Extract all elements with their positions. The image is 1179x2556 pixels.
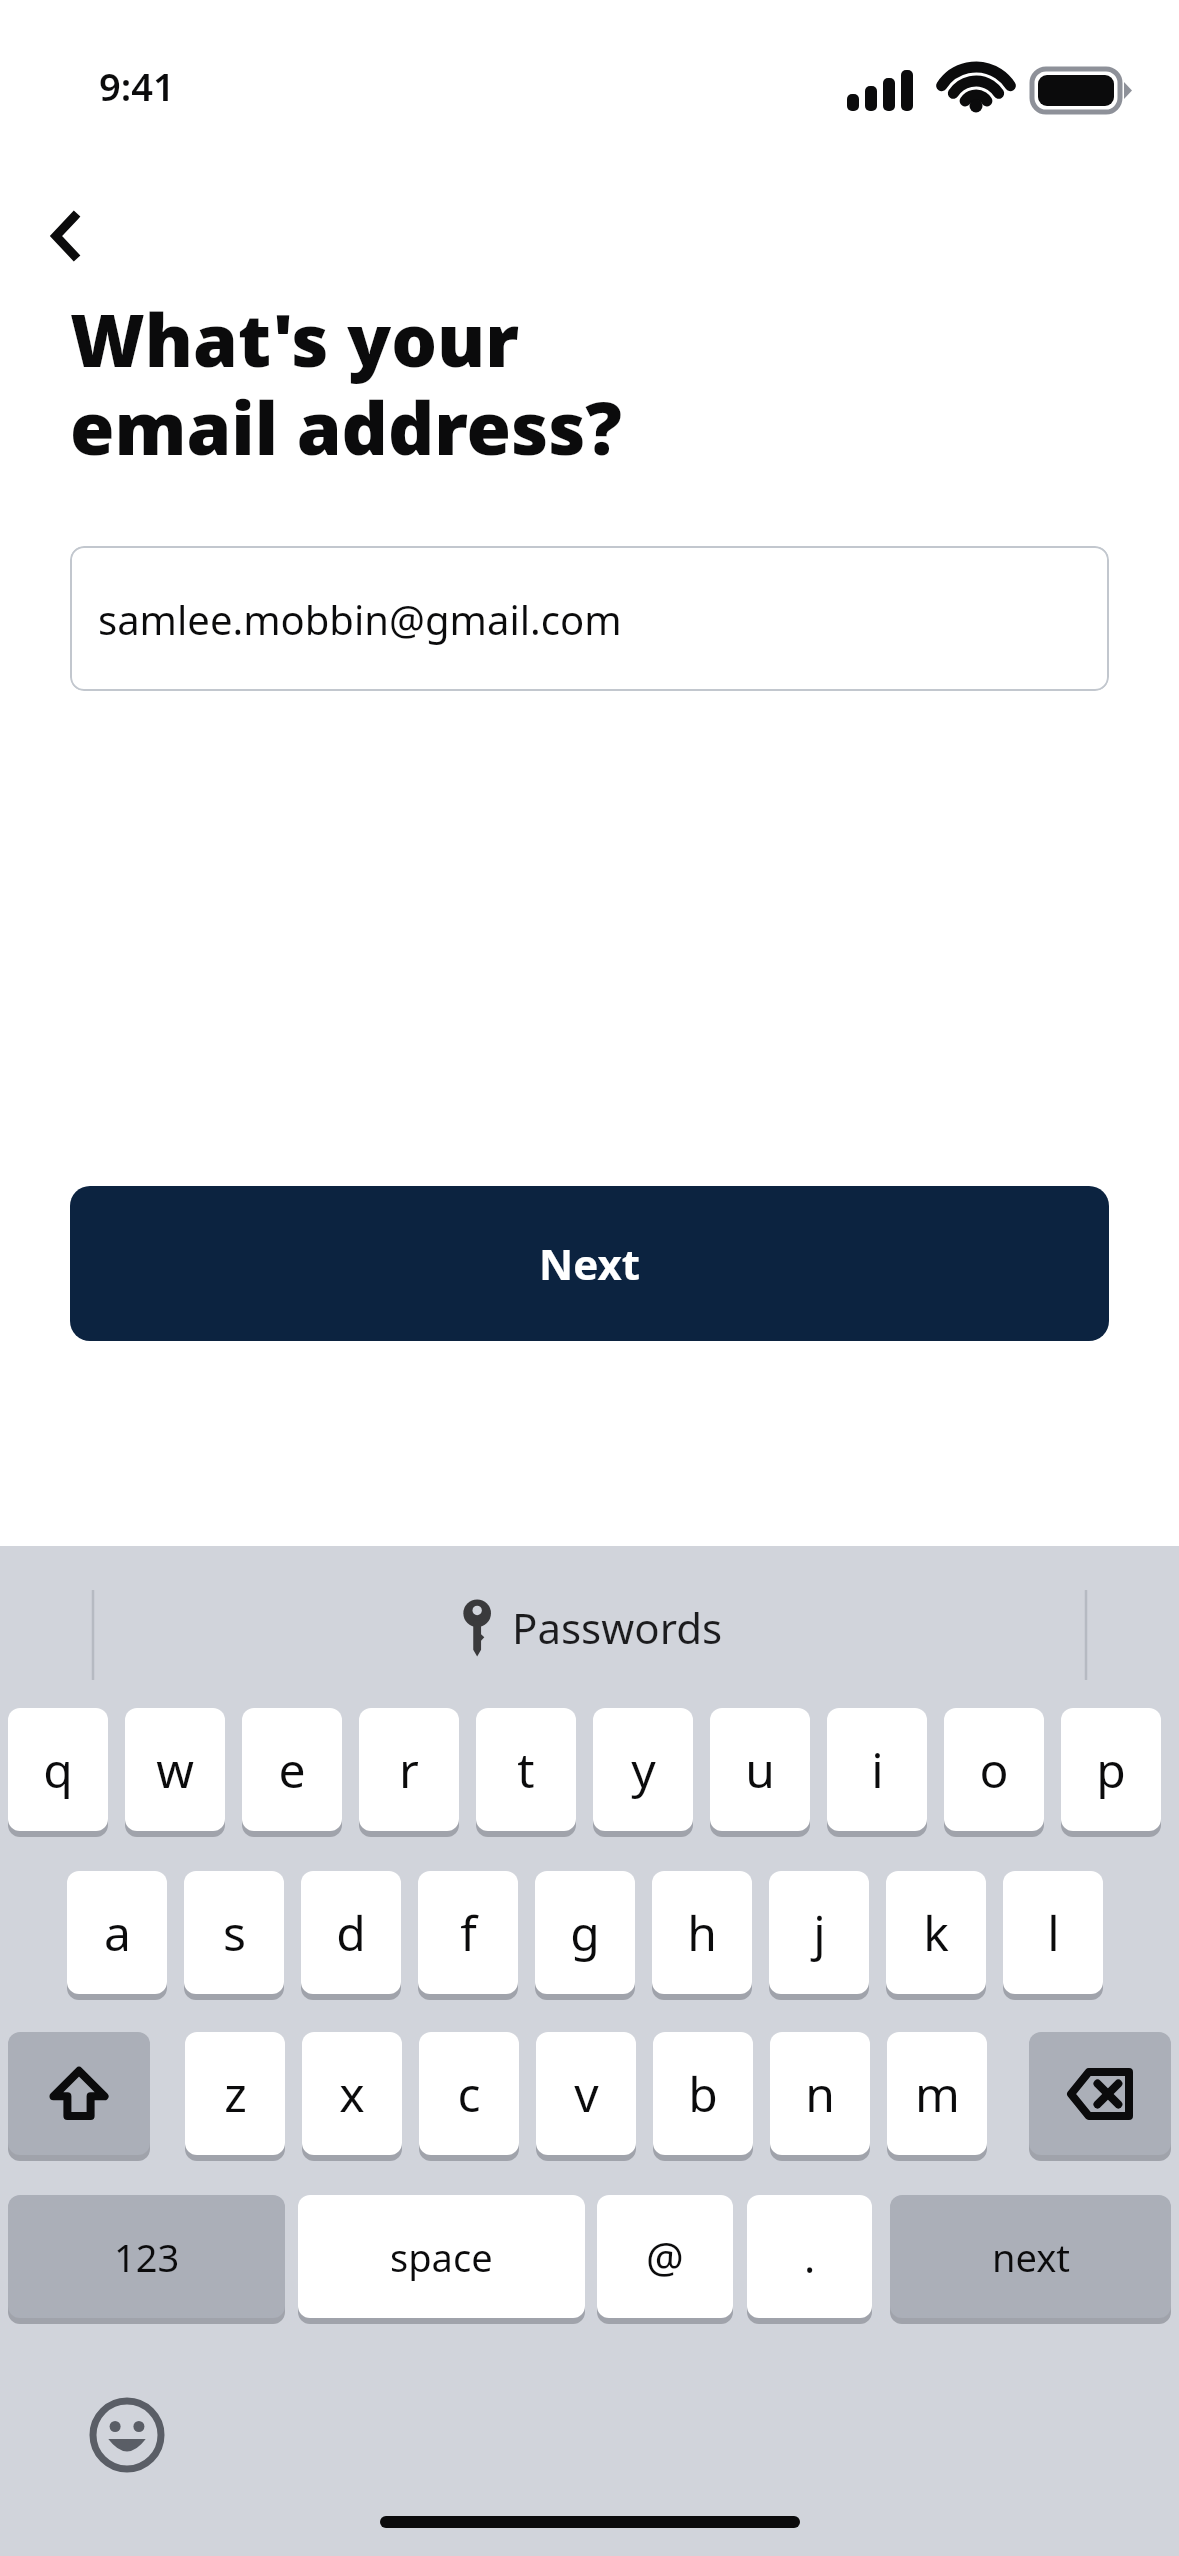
staticText: d (336, 1900, 366, 1965)
staticText: x (339, 2061, 365, 2126)
staticText: h (687, 1900, 717, 1965)
staticText: y (631, 1737, 656, 1802)
button[interactable]: y (593, 1708, 693, 1831)
staticText: l (1047, 1900, 1060, 1965)
staticText: next (992, 2231, 1070, 2283)
button[interactable]: r (359, 1708, 459, 1831)
button[interactable]: Emoji keyboard (88, 2396, 166, 2474)
button[interactable]: Back (28, 196, 108, 276)
staticText: a (104, 1900, 131, 1965)
button[interactable]: s (184, 1871, 284, 1994)
staticText: g (570, 1900, 600, 1965)
staticText: c (457, 2061, 481, 2126)
button[interactable]: t (476, 1708, 576, 1831)
button[interactable]: Numbers (8, 2195, 285, 2318)
button[interactable]: p (1061, 1708, 1161, 1831)
staticText: e (278, 1737, 306, 1802)
button[interactable]: At sign (597, 2195, 733, 2318)
button[interactable]: Backspace (1029, 2032, 1171, 2155)
button[interactable]: k (886, 1871, 986, 1994)
button[interactable]: l (1003, 1871, 1103, 1994)
staticText: p (1096, 1737, 1126, 1802)
button[interactable]: e (242, 1708, 342, 1831)
button[interactable]: i (827, 1708, 927, 1831)
staticText: . (804, 2228, 816, 2285)
staticText: f (460, 1900, 477, 1965)
staticText: 123 (114, 2231, 180, 2283)
staticText: m (915, 2061, 960, 2126)
staticText: i (871, 1737, 884, 1802)
button[interactable]: samlee.mobbin@gmail.com (70, 546, 1109, 691)
staticText: b (688, 2061, 718, 2126)
button[interactable]: Next (70, 1186, 1109, 1341)
staticText: Next (539, 1235, 640, 1292)
staticText: What's your email address? (70, 290, 622, 476)
button[interactable]: j (769, 1871, 869, 1994)
button[interactable]: c (419, 2032, 519, 2155)
staticText: n (805, 2061, 835, 2126)
staticText: v (574, 2061, 599, 2126)
staticText: space (390, 2231, 493, 2283)
staticText: o (979, 1737, 1009, 1802)
button[interactable]: a (67, 1871, 167, 1994)
button[interactable]: b (653, 2032, 753, 2155)
staticText: k (923, 1900, 949, 1965)
button[interactable]: v (536, 2032, 636, 2155)
button[interactable]: u (710, 1708, 810, 1831)
button[interactable]: h (652, 1871, 752, 1994)
button[interactable]: x (302, 2032, 402, 2155)
button[interactable]: g (535, 1871, 635, 1994)
button[interactable]: Period (747, 2195, 872, 2318)
button[interactable]: Shift (8, 2032, 150, 2155)
button[interactable]: m (887, 2032, 987, 2155)
staticText: q (43, 1737, 73, 1802)
button[interactable]: q (8, 1708, 108, 1831)
staticText: s (223, 1900, 246, 1965)
button[interactable]: d (301, 1871, 401, 1994)
staticText: j (813, 1900, 826, 1965)
staticText: @ (646, 2228, 684, 2285)
button[interactable]: Passwords (456, 1597, 723, 1657)
staticText: samlee.mobbin@gmail.com (98, 592, 622, 646)
button[interactable]: f (418, 1871, 518, 1994)
button[interactable]: o (944, 1708, 1044, 1831)
staticText: 9:41 (99, 60, 175, 112)
staticText: u (745, 1737, 775, 1802)
button[interactable]: n (770, 2032, 870, 2155)
button[interactable]: Next (890, 2195, 1171, 2318)
button[interactable]: z (185, 2032, 285, 2155)
staticText: Passwords (512, 1599, 723, 1656)
staticText: t (517, 1737, 535, 1802)
staticText: w (156, 1737, 194, 1802)
staticText: r (399, 1737, 419, 1802)
button[interactable]: Space (298, 2195, 585, 2318)
staticText: z (224, 2061, 247, 2126)
button[interactable]: w (125, 1708, 225, 1831)
